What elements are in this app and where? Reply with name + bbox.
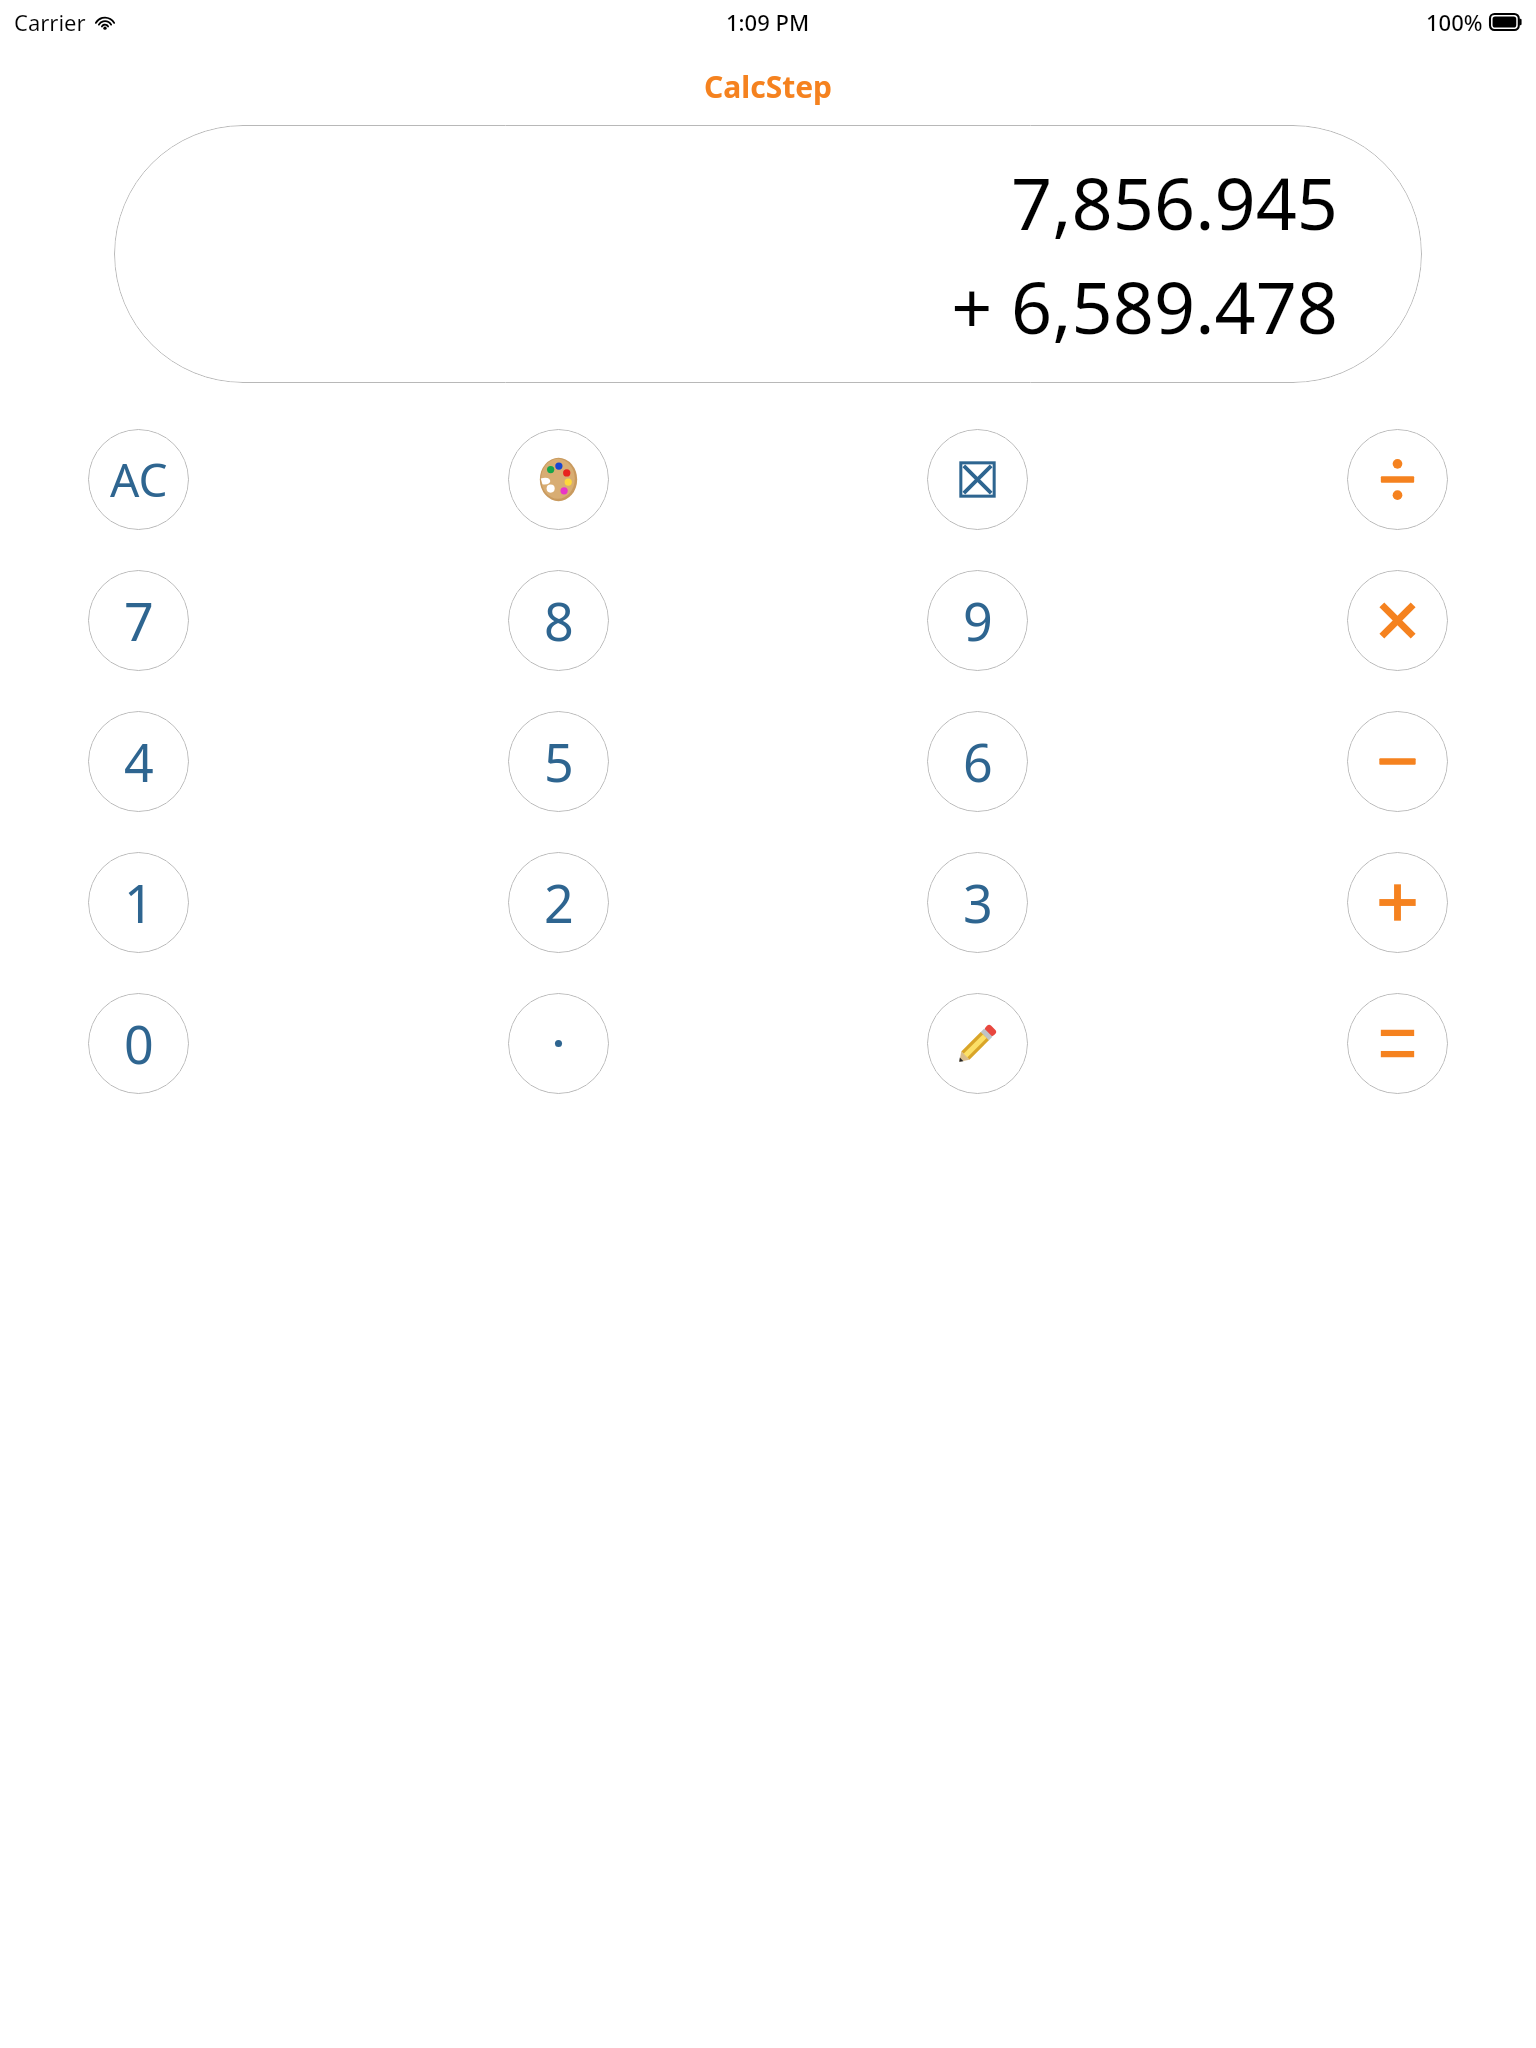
button[interactable]: 9 [927, 570, 1028, 671]
staticText: 2 [544, 867, 574, 938]
button[interactable]: 7 [88, 570, 189, 671]
button[interactable]: Decimal point [508, 993, 609, 1094]
staticText: 7,856.945 [1011, 153, 1338, 251]
staticText: 0 [124, 1008, 154, 1079]
button[interactable]: AC [88, 429, 189, 530]
button[interactable]: Minus [1347, 711, 1448, 812]
staticText: 9 [963, 585, 993, 656]
staticText: 3 [963, 867, 993, 938]
button[interactable]: Theme [508, 429, 609, 530]
button[interactable]: Divide [1347, 429, 1448, 530]
staticText: + 6,589.478 [951, 257, 1338, 355]
button[interactable]: Multiply [1347, 570, 1448, 671]
button[interactable]: Equals [1347, 993, 1448, 1094]
button[interactable]: 4 [88, 711, 189, 812]
button[interactable]: 0 [88, 993, 189, 1094]
button[interactable]: 2 [508, 852, 609, 953]
staticText: CalcStep [704, 66, 833, 107]
button[interactable]: 1 [88, 852, 189, 953]
staticText: 1 [124, 867, 154, 938]
button[interactable]: Plus [1347, 852, 1448, 953]
staticText: AC [110, 448, 168, 511]
staticText: 6 [963, 726, 993, 797]
staticText: 5 [544, 726, 574, 797]
button[interactable]: 3 [927, 852, 1028, 953]
button[interactable]: 6 [927, 711, 1028, 812]
staticText: 100% [1426, 7, 1483, 37]
button[interactable]: Edit [927, 993, 1028, 1094]
staticText: Carrier [14, 7, 86, 37]
staticText: 7 [124, 585, 154, 656]
staticText: 8 [544, 585, 574, 656]
staticText: 4 [124, 726, 154, 797]
button[interactable]: Backspace [927, 429, 1028, 530]
staticText: 1:09 PM [726, 7, 810, 37]
button[interactable]: 5 [508, 711, 609, 812]
button[interactable]: 8 [508, 570, 609, 671]
